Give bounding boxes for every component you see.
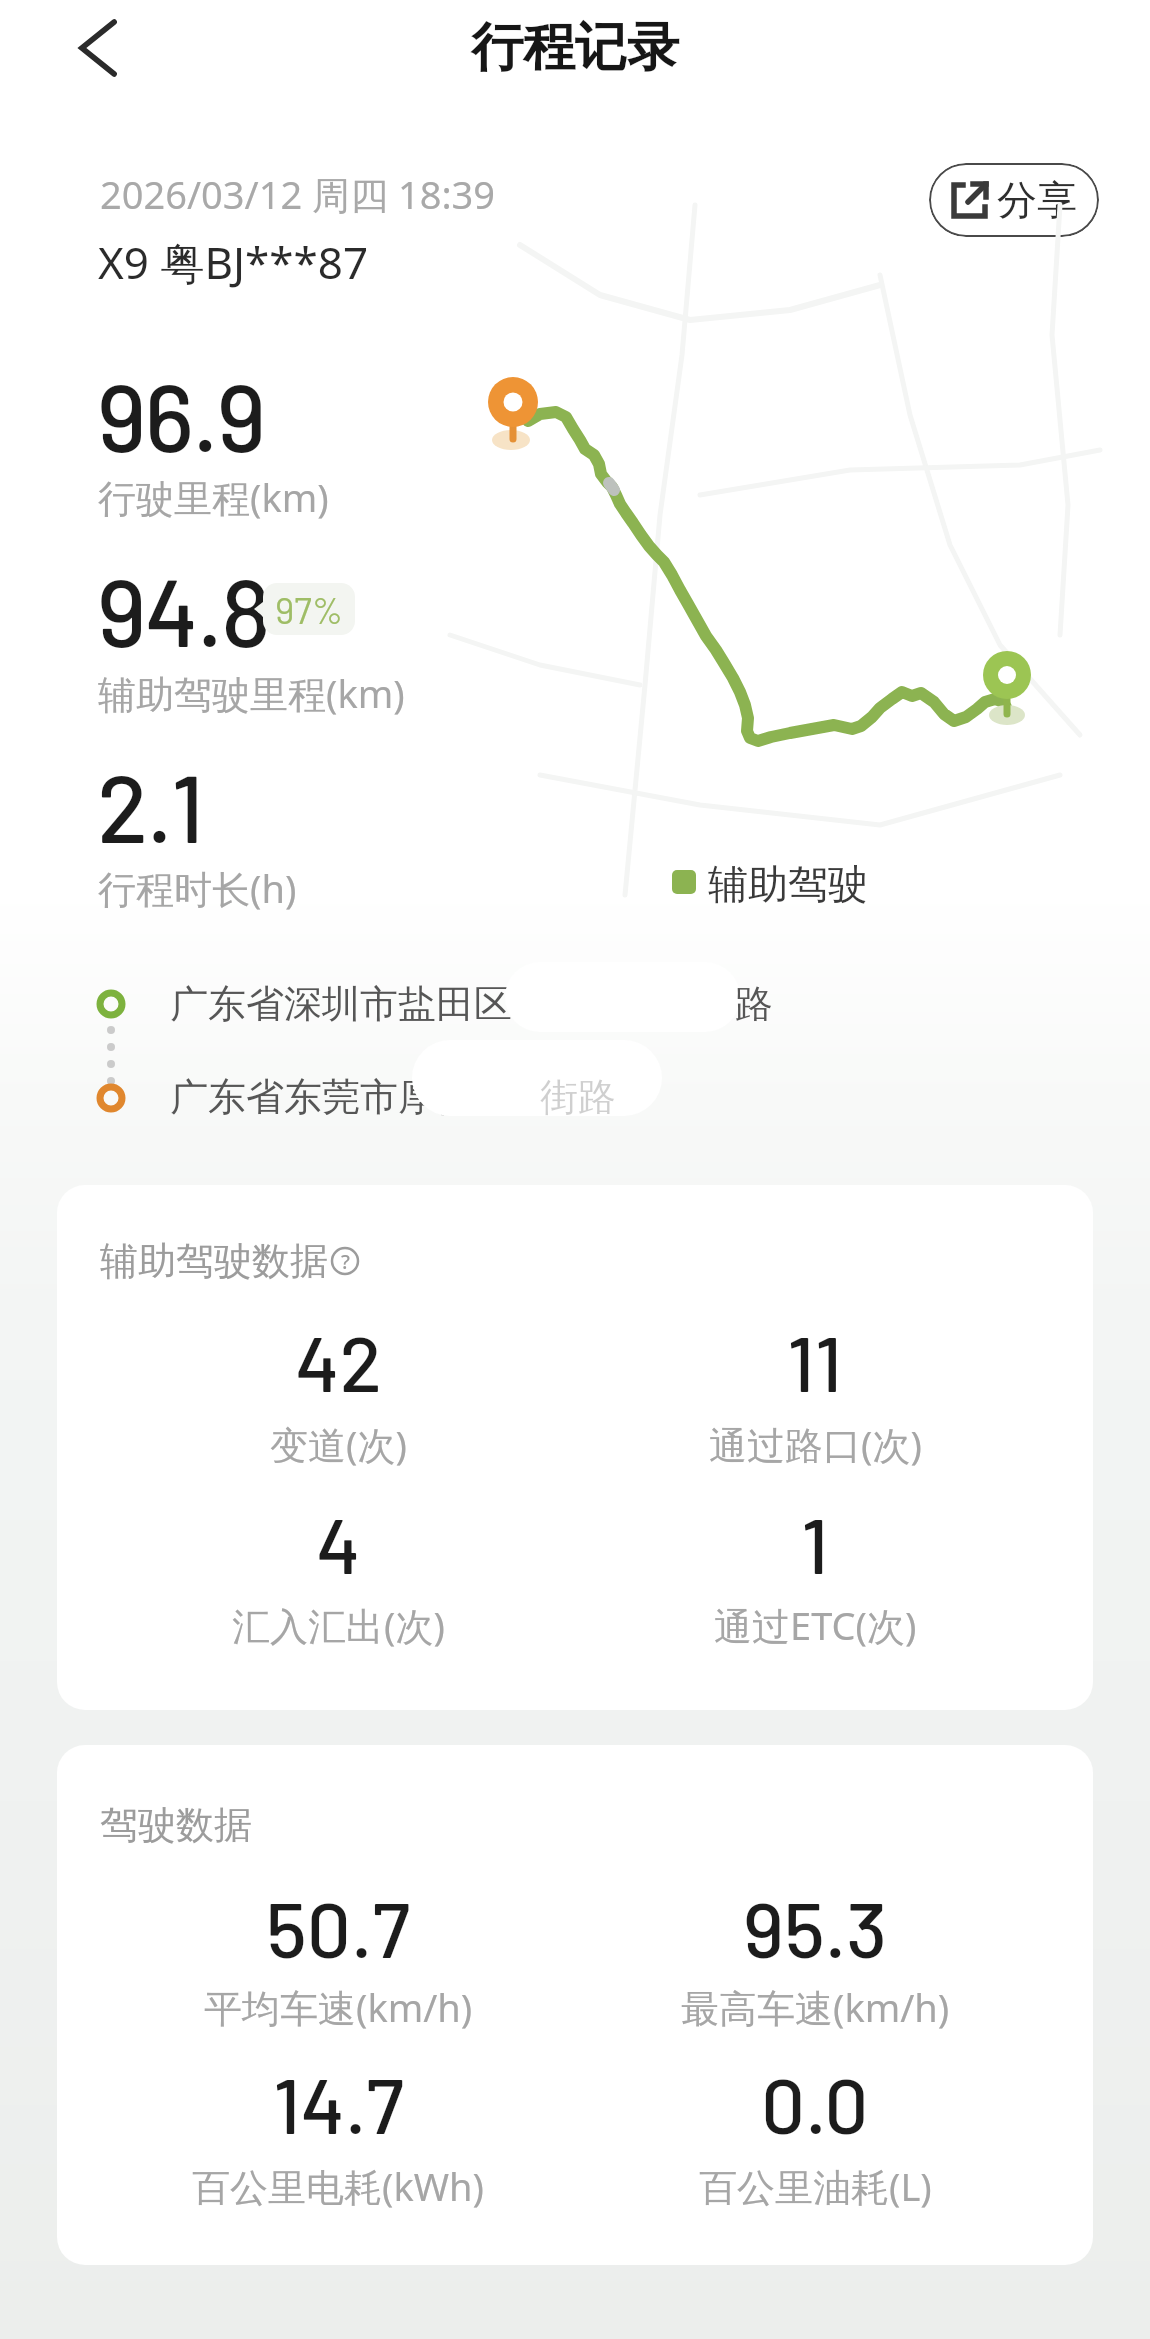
staticText: 百公里油耗(L) <box>699 2160 932 2212</box>
staticText: 驾驶数据 <box>100 1801 252 1849</box>
staticText: ? <box>341 1248 350 1275</box>
staticText: 平均车速(km/h) <box>204 1981 473 2033</box>
staticText: 分享 <box>997 175 1077 225</box>
staticText: 行程记录 <box>471 15 679 81</box>
staticText: 汇入汇出(次) <box>232 1599 445 1651</box>
staticText: 94.8 <box>97 553 270 666</box>
button[interactable] <box>60 8 136 88</box>
staticText: 变道(次) <box>270 1418 407 1470</box>
staticText: 行程时长(h) <box>98 862 297 914</box>
staticText: 广东省深圳市盐田区梧桐山 <box>170 980 626 1028</box>
staticText: 通过路口(次) <box>709 1418 922 1470</box>
staticText: 0.0 <box>761 2056 869 2150</box>
button[interactable] <box>57 1745 1093 2265</box>
staticText: 97% <box>275 587 344 631</box>
staticText: 路 <box>735 980 773 1028</box>
staticText: 4 <box>316 1496 361 1590</box>
staticText: 50.7 <box>266 1880 410 1974</box>
staticText: 辅助驾驶数据 <box>100 1237 328 1285</box>
staticText: 14.7 <box>273 2056 404 2150</box>
staticText: 96.9 <box>97 358 265 471</box>
staticText: 广东省东莞市厚街镇莞太街 <box>170 1073 626 1121</box>
staticText: 1 <box>801 1496 829 1590</box>
staticText: 2026/03/12 周四 18:39 <box>100 168 496 220</box>
staticText: 辅助驾驶里程(km) <box>98 667 405 719</box>
button[interactable]: 分享 <box>929 163 1099 237</box>
staticText: 2.1 <box>97 749 203 862</box>
staticText: 百公里电耗(kWh) <box>192 2160 484 2212</box>
staticText: 11 <box>787 1314 843 1408</box>
button[interactable] <box>57 1185 1093 1710</box>
staticText: 行驶里程(km) <box>98 471 329 523</box>
staticText: 辅助驾驶 <box>708 859 868 909</box>
staticText: 42 <box>295 1314 382 1408</box>
staticText: 通过ETC(次) <box>714 1599 917 1651</box>
staticText: X9 粤BJ***87 <box>98 232 369 292</box>
staticText: 街路 <box>540 1073 616 1121</box>
staticText: 最高车速(km/h) <box>681 1981 950 2033</box>
staticText: 95.3 <box>743 1880 888 1974</box>
